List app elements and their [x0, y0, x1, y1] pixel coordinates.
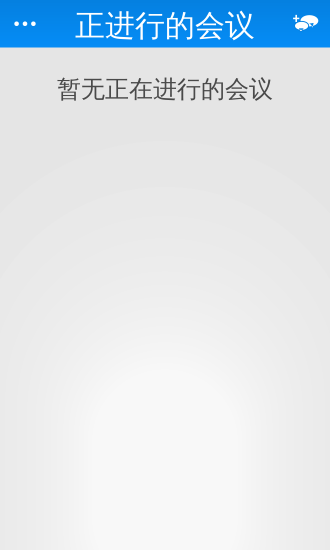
button[interactable]: More options: [0, 0, 50, 47]
staticText: 暂无正在进行的会议: [57, 74, 273, 104]
button[interactable]: New conversation: [282, 0, 330, 47]
staticText: 正进行的会议: [75, 7, 255, 44]
